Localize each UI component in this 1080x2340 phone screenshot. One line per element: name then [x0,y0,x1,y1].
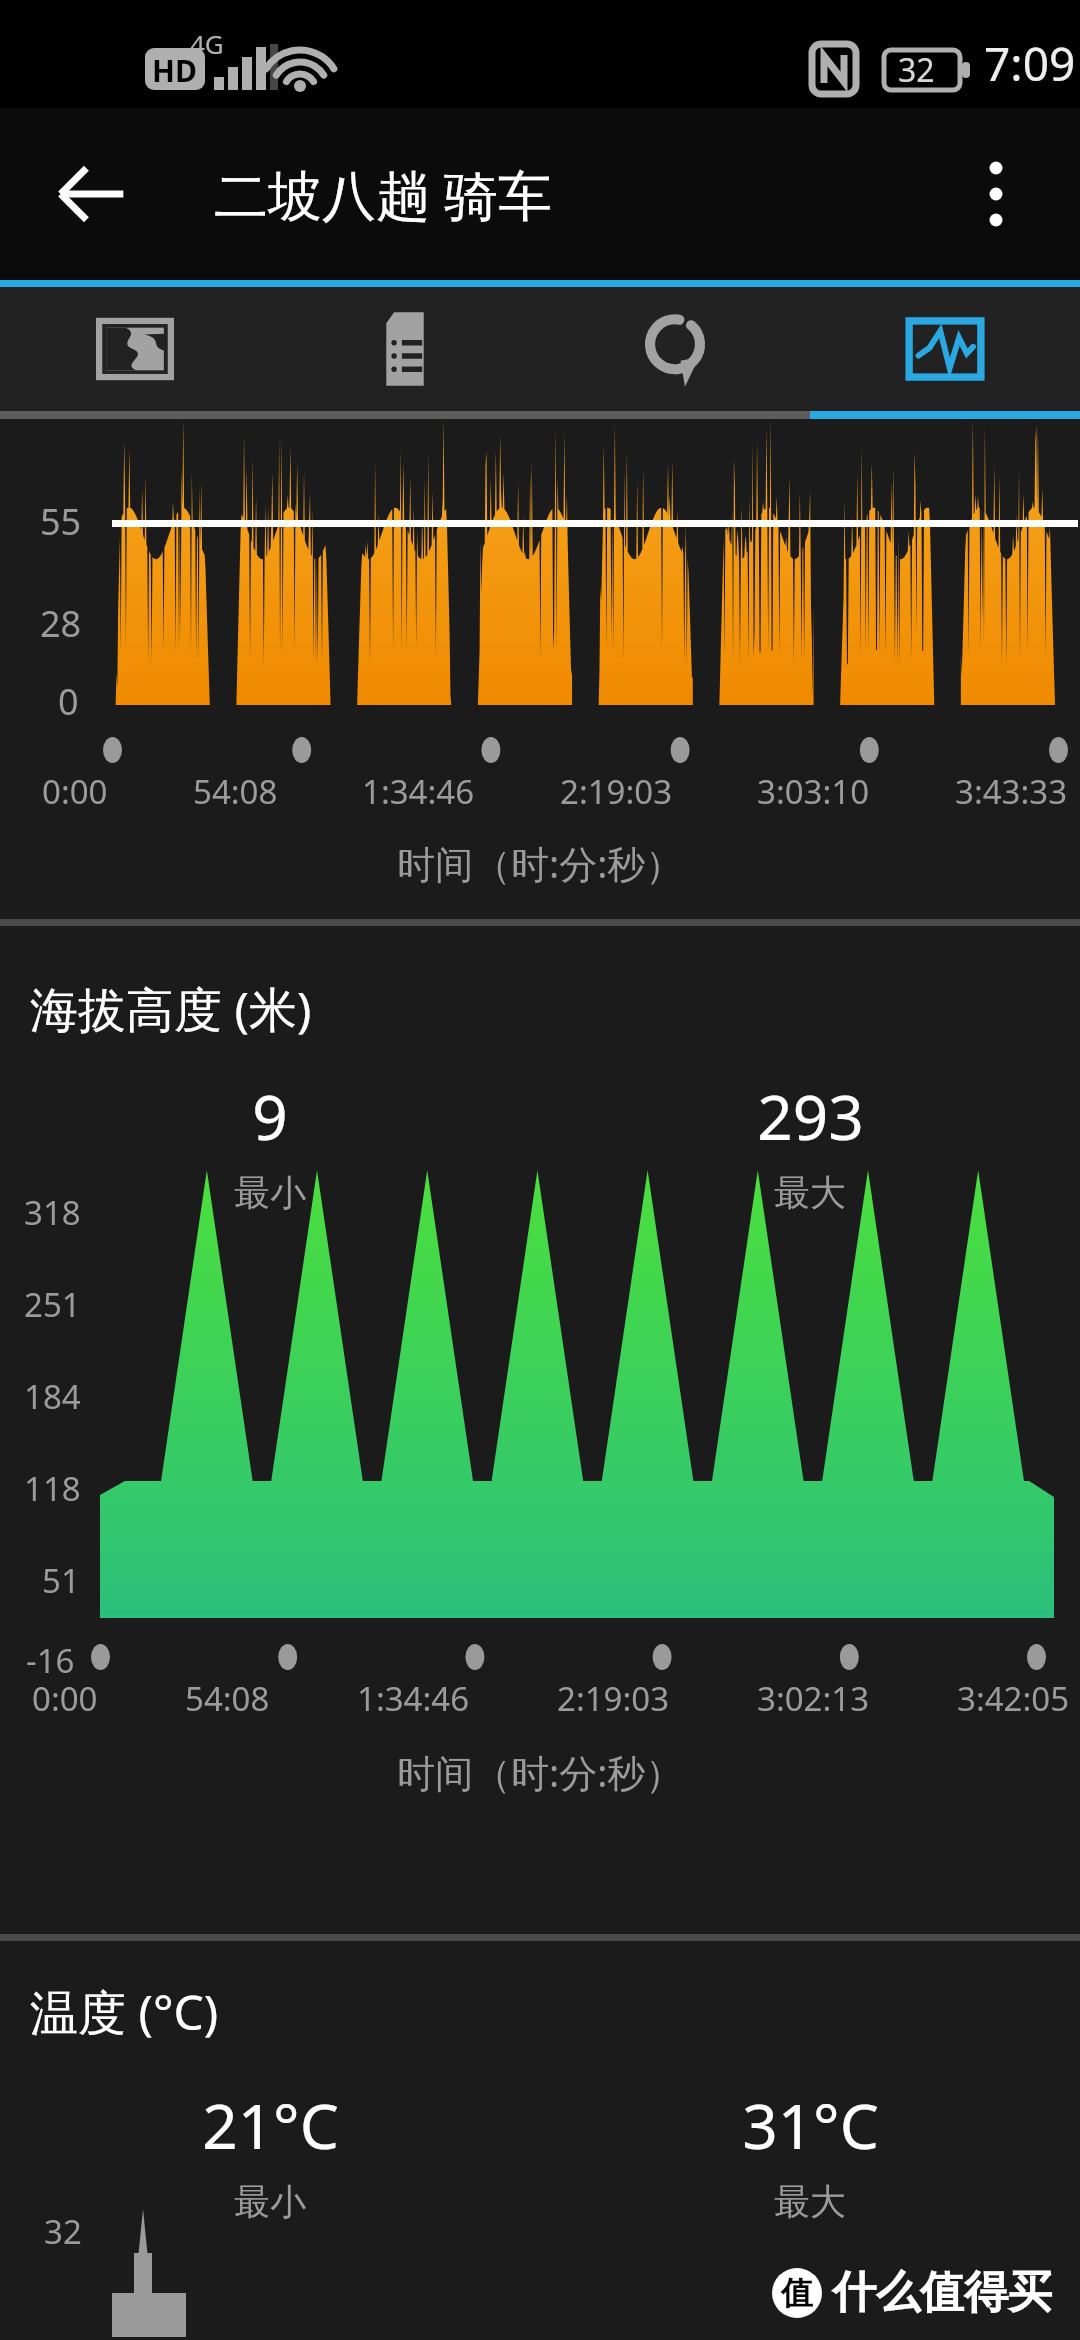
staticText: 118 [24,1466,81,1511]
staticText: 54:08 [185,1676,270,1721]
staticText: 3:02:13 [757,1676,870,1721]
staticText: 0:00 [42,769,108,814]
staticText: 2:19:03 [560,769,673,814]
staticText: 184 [24,1374,81,1419]
staticText: HD [152,50,197,91]
staticText: 32 [898,48,935,92]
button[interactable]: Back [36,138,148,250]
button[interactable]: Lap details [270,287,540,411]
staticText: 318 [24,1190,81,1235]
staticText: 54:08 [193,769,278,814]
staticText: 28 [40,599,82,648]
button[interactable]: Map track [0,287,270,411]
staticText: 值 [781,2273,813,2313]
staticText: 31°C [742,2083,879,2167]
staticText: 1:34:46 [357,1676,470,1721]
staticText: 293 [757,1074,864,1158]
staticText: 2:19:03 [557,1676,670,1721]
staticText: 什么值得买 [832,2265,1052,2320]
staticText: 最小 [234,1170,306,1215]
staticText: 时间（时:分:秒） [397,1746,684,1798]
staticText: 251 [24,1282,81,1327]
staticText: 最小 [234,2179,306,2224]
staticText: 55 [40,497,82,546]
staticText: -16 [26,1638,75,1683]
staticText: 3:03:10 [757,769,870,814]
staticText: 1:34:46 [362,769,475,814]
staticText: 51 [42,1558,80,1603]
staticText: 0 [58,677,79,726]
button[interactable]: Loop [540,287,810,411]
staticText: 二坡八趟 骑车 [214,157,553,231]
staticText: 海拔高度 (米) [30,976,312,1042]
staticText: 最大 [774,1170,846,1215]
staticText: 4G [190,26,224,61]
staticText: 3:42:05 [957,1676,1070,1721]
staticText: 21°C [202,2083,339,2167]
staticText: 时间（时:分:秒） [397,837,684,889]
staticText: 0:00 [32,1676,98,1721]
staticText: 32 [44,2209,82,2254]
staticText: 最大 [774,2179,846,2224]
staticText: 9 [252,1074,288,1158]
button[interactable]: More options [946,144,1046,244]
staticText: 温度 (°C) [30,1979,219,2045]
staticText: 3:43:33 [955,769,1068,814]
button[interactable]: Graphs [810,287,1080,411]
staticText: 7:09 [984,32,1076,95]
